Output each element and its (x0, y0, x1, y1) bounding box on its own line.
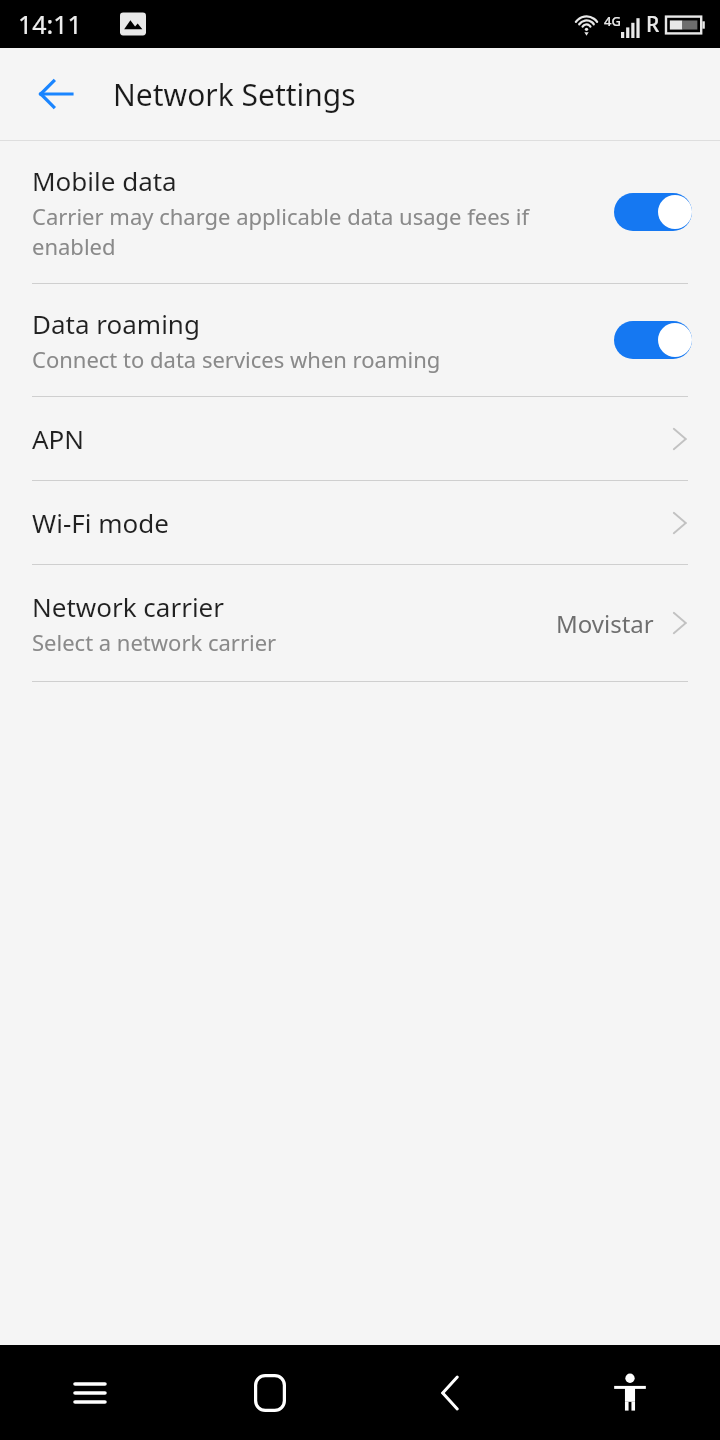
staticText: Data roaming (32, 306, 200, 341)
button[interactable]: Data roaming (0, 284, 720, 396)
button[interactable]: Wi-Fi mode (0, 481, 720, 564)
staticText: R (646, 10, 660, 39)
staticText: Mobile data (32, 163, 177, 198)
staticText: Network Settings (113, 74, 356, 115)
button[interactable]: Mobile data (0, 141, 720, 283)
button[interactable]: Toggle (614, 191, 692, 233)
button[interactable]: APN (0, 397, 720, 480)
button[interactable]: Back (360, 1345, 540, 1440)
button[interactable]: Back (22, 60, 90, 128)
staticText: Connect to data services when roaming (32, 344, 441, 374)
staticText: Network carrier (32, 589, 225, 624)
button[interactable]: Accessibility (540, 1345, 720, 1440)
staticText: 4G (604, 12, 621, 30)
button[interactable]: Menu (0, 1345, 180, 1440)
staticText: Wi-Fi mode (32, 505, 169, 540)
button[interactable]: Home (180, 1345, 360, 1440)
staticText: Movistar (556, 607, 654, 640)
staticText: Carrier may charge applicable data usage… (32, 201, 530, 261)
button[interactable]: Network carrier (0, 565, 720, 681)
staticText: APN (32, 421, 85, 456)
staticText: Select a network carrier (32, 627, 277, 657)
button[interactable]: Toggle (614, 319, 692, 361)
staticText: 14:11 (18, 7, 82, 41)
